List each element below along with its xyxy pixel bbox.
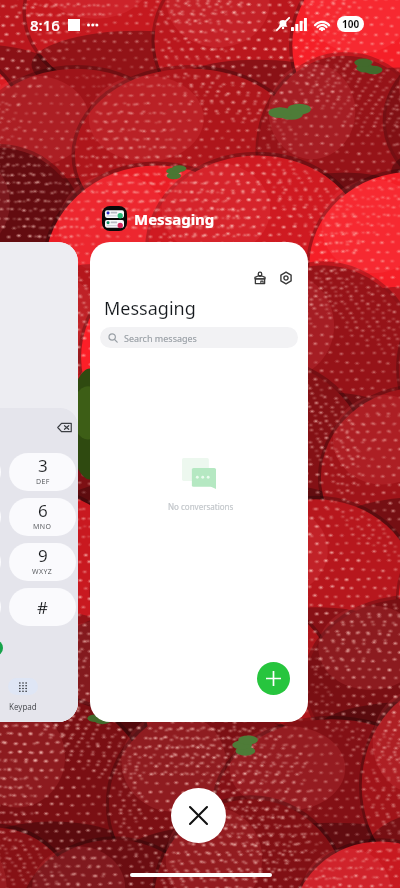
staticText: Search messages xyxy=(124,332,197,344)
staticText: No conversations xyxy=(168,501,234,512)
button[interactable]: # xyxy=(9,588,76,626)
button[interactable]: 9 xyxy=(9,543,76,581)
staticText: 6 xyxy=(38,499,48,522)
button[interactable]: Settings xyxy=(273,265,299,291)
button[interactable] xyxy=(0,453,1,491)
staticText: 3 xyxy=(38,454,48,477)
button[interactable] xyxy=(8,678,38,695)
staticText: MNO xyxy=(33,522,52,532)
staticText: Messaging xyxy=(104,296,196,321)
button[interactable]: Backspace xyxy=(0,242,78,722)
staticText: Keypad xyxy=(9,701,37,712)
staticText: 9 xyxy=(38,544,48,567)
button[interactable]: Backspace xyxy=(54,417,74,437)
button[interactable]: Clean up xyxy=(247,265,273,291)
staticText: # xyxy=(37,596,48,619)
button[interactable]: Search messages xyxy=(100,327,298,348)
button[interactable]: New conversation xyxy=(257,662,290,695)
button[interactable]: Messaging xyxy=(134,209,215,229)
staticText: 8:16 xyxy=(30,15,60,35)
button[interactable]: 6 xyxy=(9,498,76,536)
button[interactable]: Clear all xyxy=(171,788,226,843)
button[interactable] xyxy=(0,588,1,626)
button[interactable] xyxy=(0,498,1,536)
button[interactable]: Clean up xyxy=(90,242,308,722)
staticText: DEF xyxy=(36,477,50,487)
button[interactable]: 3 xyxy=(9,453,76,491)
staticText: 100 xyxy=(342,17,360,31)
button[interactable] xyxy=(0,543,1,581)
staticText: WXYZ xyxy=(32,567,53,577)
